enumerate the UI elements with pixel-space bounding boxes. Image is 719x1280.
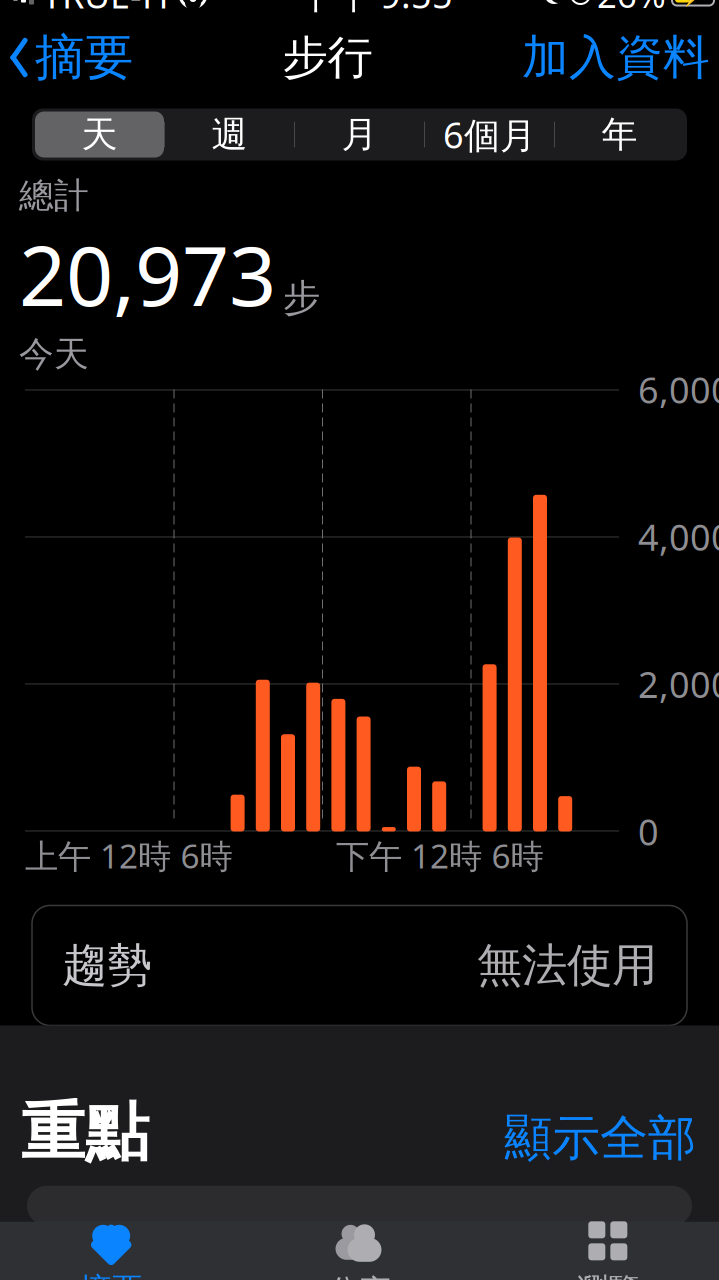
staticText: 6,000 [638,366,719,413]
button[interactable]: 月 [295,111,424,157]
staticText: 步行 [282,30,372,85]
staticText: 天 [81,112,117,157]
staticText: 0 [638,808,659,855]
staticText: 下午 12時 [336,833,482,878]
staticText: 月 [341,112,377,157]
staticText: 瀏覽 [576,1270,640,1280]
staticText: 重點 [21,1093,149,1172]
staticText: 顯示全部 [504,1109,696,1168]
staticText: 分享 [327,1272,391,1280]
staticText: 趨勢 [62,938,152,993]
staticText: 2,000 [638,660,719,708]
staticText: 無法使用 [477,938,657,993]
staticText: 6時 [491,833,543,878]
button[interactable]: 趨勢 [32,905,687,1025]
button[interactable]: 天 [35,111,164,157]
staticText: 摘要 [35,27,133,88]
staticText: 週 [211,112,247,157]
button[interactable]: 分享 [235,1221,484,1280]
staticText: 4,000 [638,513,719,561]
button[interactable]: 週 [165,111,294,157]
staticText: 26% [597,0,666,17]
staticText: 上午 12時 [25,833,171,878]
button[interactable]: 顯示全部 [502,1105,698,1172]
staticText: 20,973 [19,219,276,329]
staticText: 6時 [180,833,232,878]
staticText: 步 [283,275,320,321]
button[interactable]: 年 [555,111,684,157]
staticText: 6個月 [443,111,536,158]
staticText: 加入資料 [522,29,710,86]
staticText: 摘要 [79,1270,143,1280]
staticText: 今天 [19,333,89,375]
staticText: 下午 9:55 [299,0,453,18]
button[interactable]: 6個月 [425,111,554,157]
button[interactable]: 摘要 [0,1221,235,1280]
button[interactable]: 瀏覽 [484,1221,719,1280]
button[interactable]: 加入資料 [520,23,712,92]
button[interactable]: 摘要 [7,21,135,94]
staticText: 總計 [19,174,89,217]
staticText: TRUE-H [42,0,169,18]
staticText: ⚡ [679,0,706,7]
staticText: 年 [601,112,637,157]
